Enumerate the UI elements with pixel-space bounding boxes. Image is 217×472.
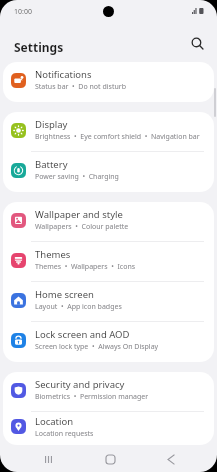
button[interactable]: Themes xyxy=(3,242,214,282)
staticText: Screen lock type • Always On Display xyxy=(35,342,159,352)
button[interactable]: Location xyxy=(3,412,214,445)
staticText: Display xyxy=(35,118,68,131)
button[interactable]: Search xyxy=(185,31,209,55)
staticText: Themes xyxy=(35,248,71,261)
staticText: Status bar • Do not disturb xyxy=(35,82,126,92)
button[interactable]: Home xyxy=(96,446,124,472)
staticText: Wallpaper and style xyxy=(35,208,123,221)
staticText: Location xyxy=(35,415,74,428)
staticText: Security and privacy xyxy=(35,378,125,391)
staticText: Notifications xyxy=(35,68,92,81)
staticText: Brightness • Eye comfort shield • Naviga… xyxy=(35,132,200,142)
button[interactable]: Recent apps xyxy=(34,446,62,472)
staticText: Lock screen and AOD xyxy=(35,328,130,341)
staticText: Settings xyxy=(14,39,64,55)
staticText: Wallpapers • Colour palette xyxy=(35,222,129,232)
button[interactable]: Back xyxy=(157,446,185,472)
staticText: Power saving • Charging xyxy=(35,172,119,182)
staticText: Themes • Wallpapers • Icons xyxy=(35,262,136,272)
button[interactable]: Home screen xyxy=(3,282,214,322)
button[interactable]: Security and privacy xyxy=(3,372,214,412)
staticText: Home screen xyxy=(35,288,94,301)
staticText: Location requests xyxy=(35,429,94,439)
button[interactable]: Wallpaper and style xyxy=(3,202,214,242)
button[interactable]: Lock screen and AOD xyxy=(3,322,214,362)
button[interactable]: Display xyxy=(3,112,214,152)
staticText: Battery xyxy=(35,158,68,171)
staticText: Biometrics • Permission manager xyxy=(35,392,149,402)
button[interactable]: Battery xyxy=(3,152,214,192)
button[interactable]: Notifications xyxy=(3,62,214,102)
staticText: Layout • App icon badges xyxy=(35,302,122,312)
staticText: 10:00 xyxy=(14,7,32,17)
